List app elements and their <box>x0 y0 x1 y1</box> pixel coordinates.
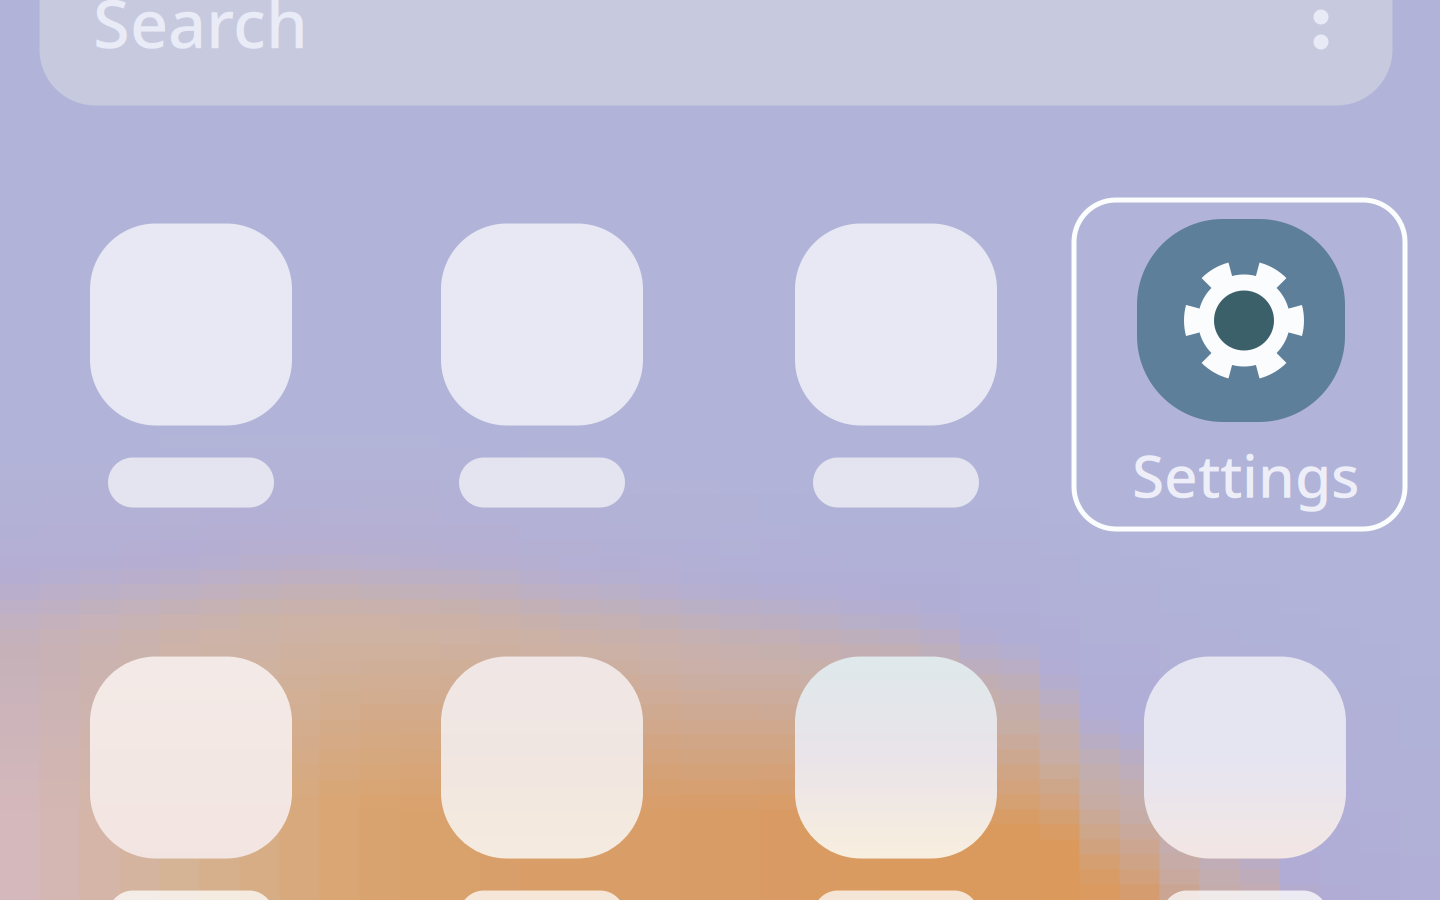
button[interactable]: Search <box>39 0 1392 105</box>
button[interactable]: App <box>795 223 997 507</box>
staticText: Settings <box>1132 436 1360 514</box>
button[interactable]: App <box>1144 656 1346 900</box>
button[interactable]: App <box>441 656 643 900</box>
button[interactable]: App <box>795 656 997 900</box>
button[interactable]: Settings <box>1074 200 1405 529</box>
button[interactable]: App <box>90 656 292 900</box>
button[interactable]: App <box>90 223 292 507</box>
button[interactable]: More options <box>1313 0 1329 50</box>
button[interactable]: App <box>441 223 643 507</box>
staticText: Search <box>93 0 308 67</box>
